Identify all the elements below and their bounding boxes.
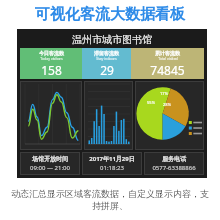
staticText: 温州市城市图书馆 bbox=[72, 33, 152, 46]
staticText: 28% bbox=[163, 102, 171, 107]
button[interactable]: 服务电话 bbox=[144, 152, 204, 175]
button[interactable]: 温州市城市图书馆 bbox=[17, 29, 207, 178]
button[interactable]: 2017年11月29日 bbox=[82, 152, 142, 175]
staticText: 09:00 — 21:00 bbox=[30, 164, 70, 172]
button[interactable]: 今日客流数 bbox=[20, 48, 82, 79]
staticText: 01:18:23 bbox=[100, 164, 124, 172]
staticText: Today visitors bbox=[40, 56, 63, 61]
staticText: 0577-63388866 bbox=[152, 164, 196, 172]
button[interactable]: 滞留客流数 bbox=[82, 48, 131, 79]
staticText: 17% bbox=[160, 91, 168, 96]
button[interactable]: 累计客流数 bbox=[131, 48, 204, 79]
button[interactable] bbox=[84, 81, 133, 150]
staticText: 场馆开放时间 bbox=[32, 155, 68, 163]
staticText: Stay indoors bbox=[96, 56, 117, 61]
button[interactable]: 55% bbox=[135, 81, 204, 150]
staticText: 可视化客流大数据看板 bbox=[35, 5, 185, 24]
staticText: 74845 bbox=[150, 62, 185, 78]
staticText: 29 bbox=[100, 62, 114, 78]
staticText: 55% bbox=[147, 100, 155, 105]
button[interactable] bbox=[20, 81, 82, 150]
staticText: 动态汇总显示区域客流数据，自定义显示内容，支持拼屏、 bbox=[8, 188, 212, 212]
staticText: 滞留客流数 bbox=[94, 50, 119, 56]
button[interactable]: 场馆开放时间 bbox=[20, 152, 80, 175]
staticText: 累计客流数 bbox=[155, 50, 180, 56]
staticText: Total visited bbox=[158, 56, 178, 61]
staticText: 今日客流数 bbox=[39, 50, 64, 56]
staticText: 2017年11月29日 bbox=[89, 155, 135, 163]
staticText: 158 bbox=[41, 62, 62, 78]
staticText: 服务电话 bbox=[162, 155, 186, 163]
